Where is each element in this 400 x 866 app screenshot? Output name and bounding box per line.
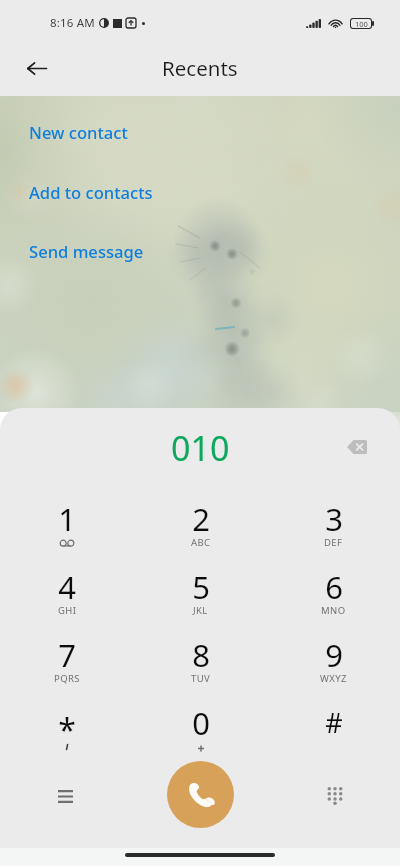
staticText: 9 [325, 634, 343, 676]
button[interactable]: 3 [267, 496, 400, 564]
button[interactable]: # [267, 700, 400, 768]
staticText: WXYZ [320, 672, 347, 685]
staticText: New contact [29, 121, 128, 144]
button[interactable]: 0 [134, 700, 267, 768]
staticText: Add to contacts [29, 181, 153, 204]
staticText: DEF [324, 536, 343, 549]
staticText: 8:16 AM [50, 15, 95, 31]
button[interactable]: 4 [0, 564, 134, 632]
staticText: 1 [58, 498, 76, 540]
button[interactable]: Back [14, 45, 60, 91]
button[interactable]: * [0, 700, 134, 768]
button[interactable]: 7 [0, 632, 134, 700]
button[interactable]: Menu [42, 773, 88, 819]
staticText: # [325, 704, 343, 741]
staticText: ABC [191, 536, 211, 549]
button[interactable]: 1 [0, 496, 134, 564]
staticText: 2 [192, 498, 210, 540]
staticText: 010 [171, 425, 230, 471]
staticText: 8 [192, 634, 210, 676]
button[interactable]: 6 [267, 564, 400, 632]
button[interactable]: Call [167, 761, 234, 828]
button[interactable]: 5 [134, 564, 267, 632]
button[interactable]: 9 [267, 632, 400, 700]
staticText: GHI [58, 604, 77, 617]
staticText: Send message [29, 240, 144, 263]
button[interactable]: Backspace [337, 427, 377, 467]
button[interactable]: 8 [134, 632, 267, 700]
button[interactable]: 2 [134, 496, 267, 564]
button[interactable]: Dialpad [312, 773, 358, 819]
staticText: MNO [321, 604, 346, 617]
staticText: 100 [355, 19, 368, 28]
button[interactable]: Add to contacts [0, 179, 400, 205]
staticText: JKL [193, 604, 208, 617]
staticText: TUV [191, 672, 211, 685]
staticText: PQRS [54, 672, 80, 685]
staticText: 6 [325, 566, 343, 608]
staticText: * [58, 708, 76, 752]
button[interactable]: Send message [0, 238, 400, 264]
staticText: 3 [325, 498, 343, 540]
staticText: 0 [192, 702, 210, 744]
button[interactable]: New contact [0, 119, 400, 145]
staticText: Recents [162, 54, 238, 82]
staticText: 7 [58, 634, 76, 676]
staticText: 5 [192, 566, 210, 608]
staticText: 4 [58, 566, 76, 608]
